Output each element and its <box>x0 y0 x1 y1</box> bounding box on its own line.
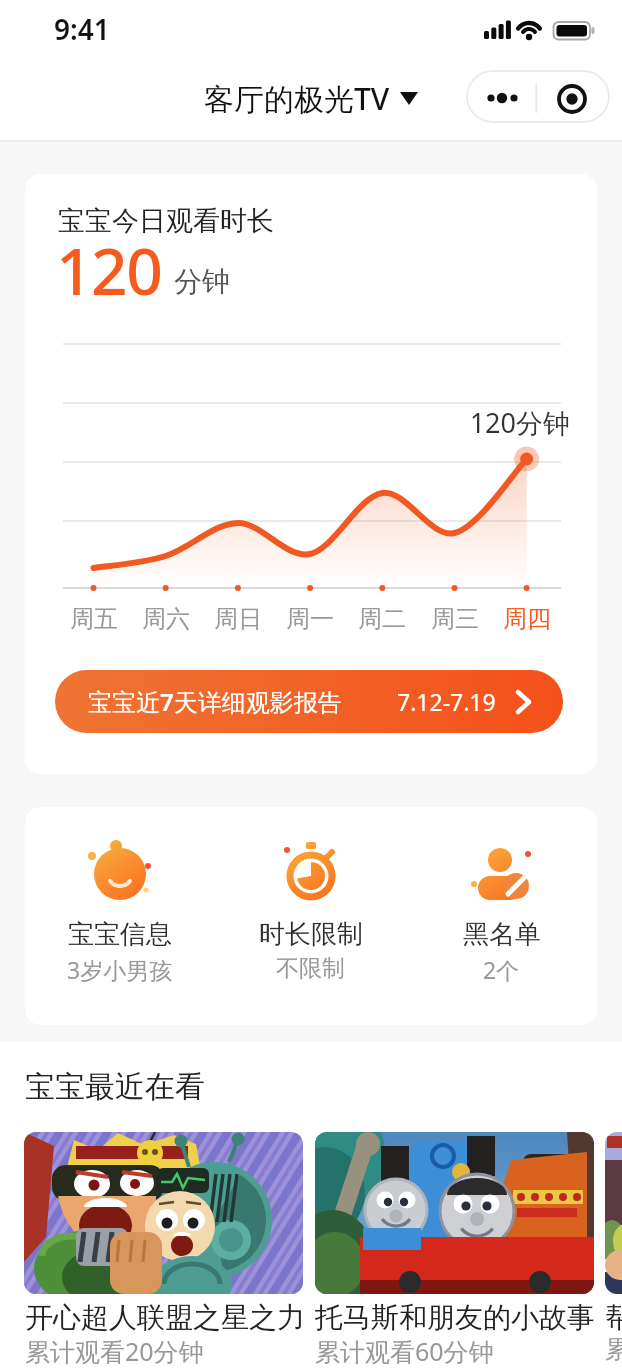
staticText: 周日 <box>203 604 273 634</box>
staticText: 3岁小男孩 <box>67 954 173 985</box>
staticText: 周一 <box>275 604 345 634</box>
staticText: 累 <box>605 1334 622 1365</box>
staticText: 周四 <box>492 604 562 634</box>
staticText: 宝宝信息 <box>68 918 172 951</box>
staticText: 宝宝今日观看时长 <box>58 204 274 238</box>
button[interactable]: 宝宝信息 <box>25 807 215 1025</box>
staticText: 托马斯和朋友的小故事 <box>315 1300 595 1335</box>
staticText: 周二 <box>347 604 417 634</box>
staticText: 开心超人联盟之星之力 <box>25 1300 305 1335</box>
staticText: 帮 <box>605 1300 622 1335</box>
button[interactable]: 宝宝近7天详细观影报告 <box>55 670 563 733</box>
staticText: 时长限制 <box>259 918 363 951</box>
button[interactable]: 黑名单 <box>406 807 597 1025</box>
staticText: 120 <box>56 227 162 314</box>
button[interactable]: 客厅的极光TV <box>204 78 418 119</box>
staticText: 周六 <box>131 604 201 634</box>
button[interactable]: 时长限制 <box>215 807 406 1025</box>
staticText: 周五 <box>59 604 129 634</box>
staticText: 不限制 <box>276 954 345 983</box>
staticText: 客厅的极光TV <box>204 78 390 119</box>
staticText: 周三 <box>420 604 490 634</box>
button[interactable] <box>466 70 610 123</box>
button[interactable] <box>315 1132 594 1294</box>
button[interactable] <box>24 1132 303 1294</box>
staticText: 9:41 <box>54 10 110 48</box>
staticText: 120分钟 <box>405 404 570 441</box>
staticText: 分钟 <box>174 264 230 299</box>
staticText: 2个 <box>483 954 520 985</box>
staticText: 累计观看20分钟 <box>25 1334 204 1368</box>
staticText: 黑名单 <box>463 918 541 951</box>
staticText: 7.12-7.19 <box>397 686 496 717</box>
staticText: 累计观看60分钟 <box>315 1334 494 1368</box>
staticText: 宝宝最近在看 <box>25 1068 205 1106</box>
button[interactable] <box>605 1132 622 1294</box>
staticText: 宝宝近7天详细观影报告 <box>88 685 342 718</box>
